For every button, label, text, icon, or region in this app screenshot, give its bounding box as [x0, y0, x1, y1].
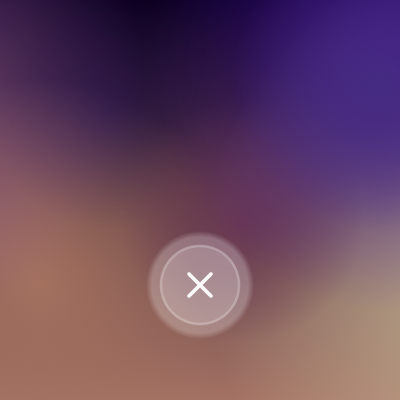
button[interactable]: Close	[140, 225, 260, 345]
